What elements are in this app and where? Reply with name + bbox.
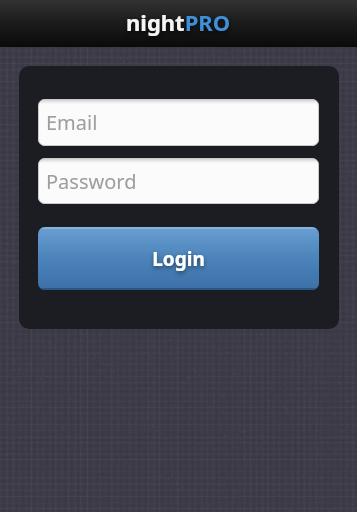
- staticText: nightPRO: [126, 7, 231, 37]
- staticText: Password: [46, 168, 137, 195]
- staticText: Login: [152, 246, 205, 272]
- staticText: Email: [46, 109, 98, 136]
- button[interactable]: Email: [38, 99, 319, 146]
- button[interactable]: Login: [38, 227, 319, 290]
- button[interactable]: Password: [38, 158, 319, 204]
